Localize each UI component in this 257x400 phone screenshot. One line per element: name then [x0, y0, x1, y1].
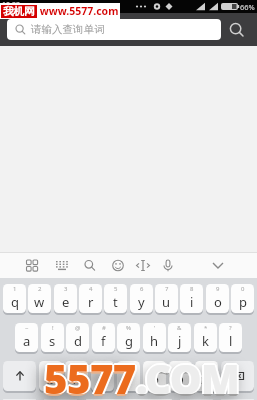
button[interactable]: ~ [15, 323, 38, 353]
staticText: .COM [135, 352, 239, 400]
button[interactable]: ; [169, 361, 192, 392]
staticText: r [88, 293, 94, 311]
staticText: .COM [136, 351, 240, 400]
staticText: w [34, 293, 45, 311]
staticText: i [190, 293, 194, 311]
staticText: f [101, 332, 106, 350]
button[interactable]: 7 [155, 284, 178, 314]
button[interactable]: / [195, 361, 218, 392]
staticText: ) [76, 362, 78, 370]
staticText: m [200, 370, 213, 388]
button[interactable]: % [117, 323, 140, 353]
staticText: z [47, 370, 54, 388]
staticText: 5577 [44, 349, 136, 400]
button[interactable]: 2 [28, 284, 51, 314]
staticText: 66% [240, 2, 255, 12]
staticText: 请输入查询单词 [31, 23, 105, 36]
staticText: @ [75, 324, 81, 332]
staticText: 我机网 [3, 5, 35, 18]
staticText: q [11, 293, 19, 311]
staticText: ( [50, 362, 52, 370]
staticText: 9 [216, 285, 220, 293]
staticText: 5577 [42, 351, 134, 400]
button[interactable]: * [194, 323, 217, 353]
staticText: x [73, 370, 80, 388]
button[interactable]: ? [219, 323, 242, 353]
button[interactable] [72, 253, 109, 278]
staticText: ? [229, 324, 232, 332]
button[interactable]: ( [39, 361, 62, 392]
button[interactable] [221, 399, 254, 400]
button[interactable]: # [92, 323, 115, 353]
staticText: n [176, 370, 185, 388]
button[interactable] [3, 361, 36, 392]
staticText: u [162, 293, 171, 311]
button[interactable] [221, 361, 254, 392]
button[interactable]: 5 [104, 284, 127, 314]
button[interactable] [44, 399, 77, 400]
staticText: _ [127, 362, 130, 370]
button[interactable]: _ [117, 361, 140, 392]
staticText: a [23, 332, 31, 350]
staticText: & [177, 324, 182, 332]
button[interactable]: 9 [206, 284, 229, 314]
staticText: * [204, 324, 208, 332]
button[interactable] [3, 399, 36, 400]
staticText: 5577 [43, 352, 135, 400]
staticText: 5 [114, 285, 118, 293]
staticText: % [126, 324, 131, 332]
button[interactable] [180, 399, 213, 400]
staticText: .COM [138, 351, 242, 400]
button[interactable] [183, 253, 220, 278]
staticText: y [138, 293, 145, 311]
staticText: : [154, 362, 156, 370]
button[interactable]: - [91, 361, 114, 392]
staticText: ' [154, 324, 156, 332]
staticText: 3 [64, 285, 68, 293]
staticText: 2 [38, 285, 42, 293]
button[interactable]: 请输入查询单词 [7, 19, 221, 40]
button[interactable] [36, 253, 72, 278]
button[interactable]: 6 [130, 284, 153, 314]
button[interactable]: : [143, 361, 166, 392]
button[interactable]: ' [143, 323, 166, 353]
button[interactable]: 0 [231, 284, 254, 314]
button[interactable] [86, 399, 172, 400]
button[interactable] [146, 253, 183, 278]
staticText: .COM [136, 349, 240, 400]
button[interactable]: ! [41, 323, 64, 353]
staticText: e [62, 293, 70, 311]
button[interactable]: & [168, 323, 191, 353]
staticText: 5577 [44, 351, 136, 400]
button[interactable] [221, 13, 253, 46]
button[interactable]: 8 [180, 284, 203, 314]
staticText: .COM [136, 353, 240, 400]
staticText: l [229, 332, 233, 350]
staticText: p [239, 293, 247, 311]
staticText: / [205, 362, 208, 370]
staticText: www.5577.com [37, 4, 119, 18]
button[interactable]: ) [65, 361, 88, 392]
button[interactable] [109, 253, 146, 278]
button[interactable] [0, 253, 36, 278]
staticText: 1 [13, 285, 17, 293]
button[interactable]: 3 [54, 284, 77, 314]
button[interactable] [220, 253, 257, 278]
staticText: 0 [241, 285, 245, 293]
staticText: b [151, 370, 159, 388]
staticText: 10:23 [2, 0, 20, 10]
staticText: 7 [165, 285, 169, 293]
staticText: s [49, 332, 56, 350]
button[interactable]: @ [66, 323, 89, 353]
staticText: g [125, 332, 133, 350]
button[interactable]: 4 [79, 284, 102, 314]
staticText: j [178, 332, 182, 350]
staticText: 5577 [45, 352, 137, 400]
staticText: 5577 [46, 351, 138, 400]
staticText: 5577 [43, 350, 135, 400]
button[interactable]: 1 [3, 284, 26, 314]
staticText: h [150, 332, 159, 350]
staticText: ; [180, 362, 182, 370]
staticText: k [202, 332, 209, 350]
staticText: ! [52, 324, 54, 332]
